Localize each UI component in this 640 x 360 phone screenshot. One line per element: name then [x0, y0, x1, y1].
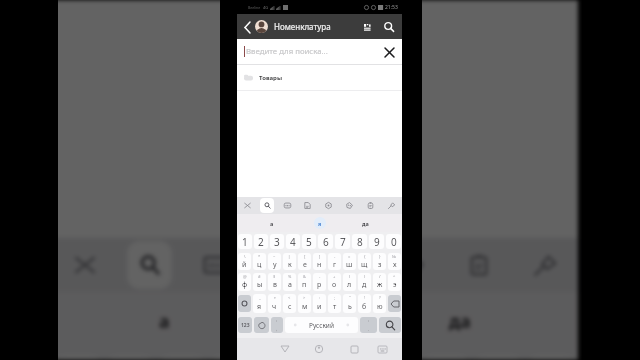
- button[interactable]: я: [309, 214, 331, 232]
- button[interactable]: Pin: [381, 197, 402, 214]
- button[interactable]: 1: [55, 356, 101, 360]
- button[interactable]: Comma: [271, 317, 283, 333]
- button[interactable]: Clipboard: [446, 238, 512, 292]
- button[interactable]: =: [343, 253, 356, 270]
- button[interactable]: ~: [268, 253, 281, 270]
- button[interactable]: (: [343, 273, 356, 291]
- button[interactable]: Stickers: [380, 238, 446, 292]
- button[interactable]: Search: [257, 197, 277, 214]
- button[interactable]: 3: [159, 356, 205, 360]
- staticText: т: [333, 302, 337, 312]
- button[interactable]: %: [283, 273, 296, 291]
- button[interactable]: Recents: [343, 338, 365, 360]
- button[interactable]: 9: [475, 356, 522, 360]
- button[interactable]: Search: [117, 238, 182, 292]
- button[interactable]: Close: [237, 197, 257, 214]
- button[interactable]: 7: [335, 234, 350, 249]
- button[interactable]: 4: [286, 234, 300, 249]
- button[interactable]: 1: [238, 234, 252, 249]
- button[interactable]: 2: [107, 356, 153, 360]
- button[interactable]: ]: [313, 253, 326, 270]
- button[interactable]: Barcode scanner: [358, 18, 376, 36]
- button[interactable]: +: [328, 273, 341, 291]
- button[interactable]: {: [358, 253, 371, 270]
- button[interactable]: да: [425, 292, 495, 349]
- button[interactable]: }: [373, 253, 386, 270]
- button[interactable]: Search: [379, 317, 401, 333]
- button[interactable]: Shift: [238, 295, 251, 312]
- button[interactable]: _: [253, 294, 266, 313]
- button[interactable]: *: [253, 253, 266, 270]
- button[interactable]: 0: [386, 234, 401, 249]
- button[interactable]: Back: [240, 17, 254, 37]
- button[interactable]: ": [343, 294, 356, 313]
- button[interactable]: Home: [308, 338, 330, 360]
- button[interactable]: 5: [302, 234, 316, 249]
- button[interactable]: GIF: [182, 238, 248, 292]
- button[interactable]: !: [358, 294, 371, 313]
- button[interactable]: Numbers: [238, 317, 252, 333]
- button[interactable]: 6: [318, 234, 333, 249]
- staticText: 4: [290, 235, 296, 249]
- button[interactable]: &: [298, 273, 311, 291]
- button[interactable]: 3: [270, 234, 284, 249]
- button[interactable]: >: [298, 294, 311, 313]
- button[interactable]: Clear: [379, 42, 399, 62]
- button[interactable]: GIF: [277, 197, 297, 214]
- button[interactable]: -: [313, 273, 326, 291]
- button[interactable]: т: [268, 294, 281, 313]
- button[interactable]: Введите для поиска...: [237, 39, 402, 64]
- button[interactable]: \: [238, 253, 251, 270]
- button[interactable]: Translate: [248, 238, 314, 292]
- button[interactable]: 8: [422, 356, 469, 360]
- staticText: ]: [319, 254, 321, 259]
- button[interactable]: Русский: [285, 317, 358, 333]
- button[interactable]: да: [354, 214, 376, 232]
- button[interactable]: Back: [274, 338, 296, 360]
- button[interactable]: ): [358, 273, 371, 291]
- button[interactable]: 7: [369, 356, 416, 360]
- button[interactable]: |: [283, 253, 296, 270]
- button[interactable]: 2: [254, 234, 268, 249]
- button[interactable]: Clipboard: [360, 197, 381, 214]
- staticText: $: [273, 274, 276, 279]
- button[interactable]: Stickers: [339, 197, 360, 214]
- button[interactable]: <: [283, 294, 296, 313]
- button[interactable]: Pin: [512, 238, 578, 292]
- button[interactable]: Hide keyboard: [371, 338, 393, 360]
- button[interactable]: 9: [369, 234, 384, 249]
- staticText: с: [288, 302, 292, 312]
- button[interactable]: Translate: [297, 197, 318, 214]
- button[interactable]: Emoji: [254, 317, 269, 333]
- button[interactable]: Close: [52, 238, 117, 292]
- button[interactable]: Товары: [237, 65, 402, 90]
- button[interactable]: я: [282, 292, 352, 349]
- button[interactable]: /: [373, 273, 386, 291]
- staticText: _: [259, 295, 261, 300]
- button[interactable]: #: [253, 273, 266, 291]
- button[interactable]: @: [238, 273, 251, 291]
- button[interactable]: Search: [379, 17, 399, 37]
- button[interactable]: №: [388, 253, 401, 270]
- button[interactable]: 4: [211, 356, 257, 360]
- button[interactable]: -: [328, 253, 341, 270]
- button[interactable]: 0: [528, 356, 575, 360]
- button[interactable]: ;: [328, 294, 341, 313]
- button[interactable]: 8: [352, 234, 367, 249]
- button[interactable]: Period: [360, 317, 377, 333]
- staticText: 2: [258, 235, 264, 249]
- button[interactable]: :: [313, 294, 326, 313]
- button[interactable]: а: [261, 214, 283, 232]
- button[interactable]: $: [268, 273, 281, 291]
- staticText: -: [319, 274, 321, 279]
- button[interactable]: ^: [388, 273, 401, 291]
- button[interactable]: Backspace: [388, 295, 401, 312]
- button[interactable]: Settings: [314, 238, 380, 292]
- staticText: Номенклатура: [274, 21, 331, 32]
- button[interactable]: Settings: [318, 197, 339, 214]
- button[interactable]: [: [298, 253, 311, 270]
- button[interactable]: а: [129, 292, 199, 349]
- button[interactable]: ?: [373, 294, 386, 313]
